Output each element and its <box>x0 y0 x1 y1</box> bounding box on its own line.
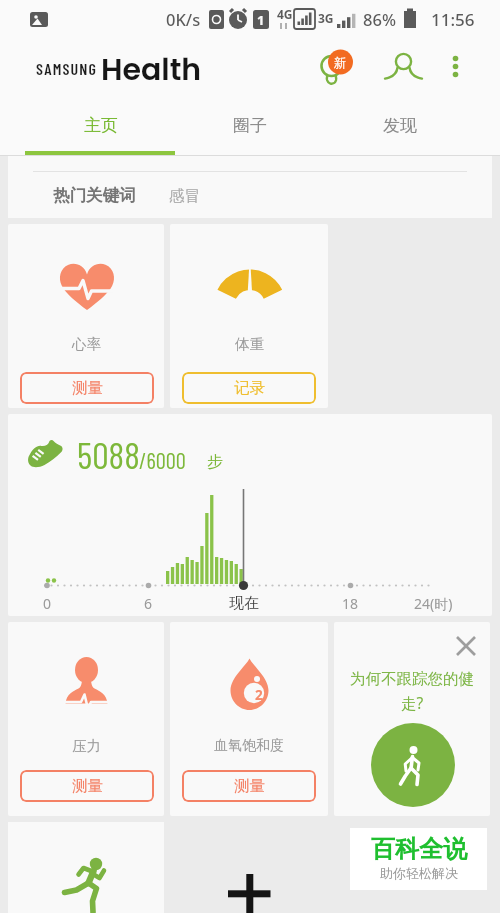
staticText: 现在 <box>229 594 259 613</box>
button[interactable] <box>334 622 490 816</box>
staticText: 测量 <box>234 776 265 796</box>
staticText: 6 <box>144 594 153 612</box>
staticText: 感冒 <box>169 186 200 204</box>
staticText: 86% <box>363 8 396 30</box>
staticText: 记录 <box>234 378 265 398</box>
staticText: 0K/s <box>166 8 201 30</box>
button[interactable] <box>20 770 154 802</box>
staticText: 血氧饱和度 <box>214 737 284 755</box>
staticText: 11:56 <box>431 8 475 30</box>
staticText: 测量 <box>72 378 103 398</box>
staticText: 热门关键词 <box>53 185 136 205</box>
button[interactable] <box>182 372 316 404</box>
staticText: 18 <box>342 594 359 612</box>
button[interactable] <box>17 103 172 153</box>
button[interactable] <box>8 156 492 218</box>
staticText: 3G <box>318 10 334 26</box>
button[interactable] <box>8 622 164 816</box>
button[interactable] <box>20 372 154 404</box>
staticText: 助你轻松解决 <box>380 865 458 881</box>
staticText: 1 <box>257 11 265 28</box>
staticText: 2 <box>255 686 263 701</box>
button[interactable] <box>385 48 423 86</box>
staticText: 发现 <box>383 115 417 136</box>
staticText: 体重 <box>235 335 264 353</box>
button[interactable] <box>8 224 164 408</box>
button[interactable] <box>327 103 483 153</box>
button[interactable] <box>8 822 164 913</box>
staticText: 心率 <box>72 335 101 353</box>
staticText: 新 <box>334 55 347 70</box>
staticText: 走? <box>401 692 424 713</box>
staticText: 压力 <box>72 737 101 755</box>
staticText: 24(时) <box>414 594 453 612</box>
button[interactable] <box>170 822 328 913</box>
staticText: 主页 <box>84 115 118 136</box>
button[interactable] <box>442 48 470 86</box>
button[interactable] <box>8 414 492 616</box>
staticText: 测量 <box>72 776 103 796</box>
staticText: 0 <box>43 594 52 612</box>
staticText: 为何不跟踪您的健 <box>350 669 474 689</box>
button[interactable] <box>170 622 328 816</box>
button[interactable] <box>371 723 455 807</box>
staticText: 5088 <box>77 432 140 476</box>
staticText: 4G <box>277 6 293 22</box>
button[interactable] <box>314 48 358 92</box>
staticText: SAMSUNG <box>36 59 98 78</box>
button[interactable] <box>450 630 482 662</box>
staticText: 百科全说 <box>371 834 467 864</box>
staticText: Health <box>101 49 202 83</box>
button[interactable] <box>170 224 328 408</box>
staticText: /6000 <box>139 446 186 470</box>
button[interactable] <box>172 103 327 153</box>
staticText: 圈子 <box>233 115 267 136</box>
button[interactable] <box>182 770 316 802</box>
staticText: 步 <box>207 452 223 472</box>
